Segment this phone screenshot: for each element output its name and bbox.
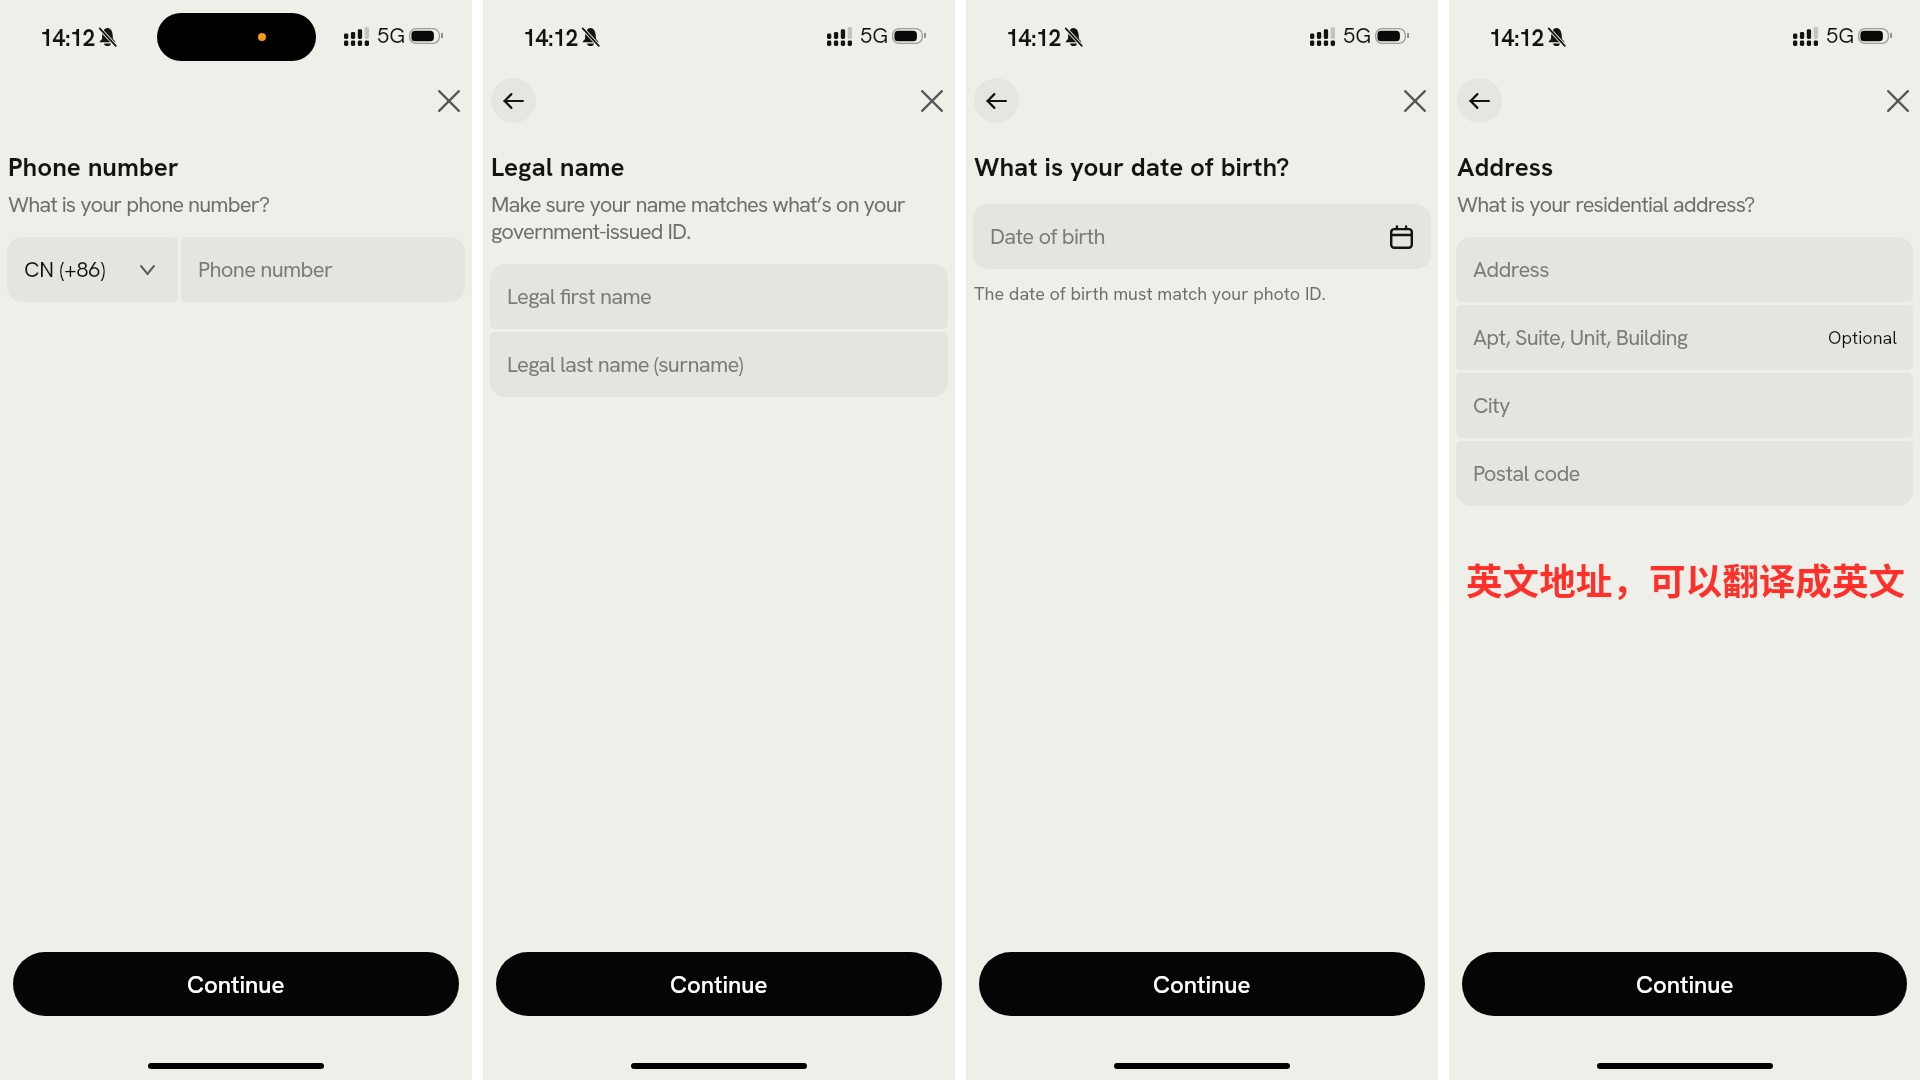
staticText: What is your residential address? bbox=[1457, 191, 1755, 218]
button[interactable]: Close bbox=[1880, 83, 1916, 119]
staticText: The date of birth must match your photo … bbox=[974, 282, 1326, 305]
button[interactable]: Close bbox=[1397, 83, 1433, 119]
staticText: Address bbox=[1473, 255, 1549, 284]
button[interactable]: Date of birth bbox=[973, 204, 1431, 269]
button[interactable]: Postal code bbox=[1456, 441, 1913, 506]
button[interactable]: Continue bbox=[496, 952, 942, 1016]
staticText: Legal name bbox=[491, 150, 625, 184]
staticText: Phone number bbox=[198, 255, 333, 284]
button[interactable]: Continue bbox=[1462, 952, 1907, 1016]
staticText: 5G bbox=[1343, 25, 1372, 48]
staticText: Continue bbox=[187, 969, 285, 1000]
button[interactable]: Continue bbox=[979, 952, 1425, 1016]
staticText: Continue bbox=[1153, 969, 1251, 1000]
staticText: Optional bbox=[1828, 326, 1898, 349]
button[interactable]: Address bbox=[1456, 237, 1913, 302]
staticText: Date of birth bbox=[990, 222, 1105, 251]
staticText: Legal last name (surname) bbox=[507, 350, 743, 379]
button[interactable]: Phone number bbox=[181, 237, 465, 302]
staticText: Apt, Suite, Unit, Building bbox=[1473, 323, 1688, 352]
staticText: 14:12 bbox=[523, 23, 579, 53]
staticText: 英文地址，可以翻译成英文 bbox=[1466, 553, 1906, 606]
button[interactable]: Back bbox=[974, 78, 1019, 123]
staticText: Phone number bbox=[8, 150, 179, 184]
button[interactable]: Legal first name bbox=[490, 264, 948, 329]
button[interactable]: Apt, Suite, Unit, Building bbox=[1456, 305, 1913, 370]
staticText: CN (+86) bbox=[24, 255, 106, 284]
staticText: City bbox=[1473, 391, 1510, 420]
button[interactable]: Close bbox=[431, 83, 467, 119]
staticText: 14:12 bbox=[1489, 23, 1545, 53]
staticText: 5G bbox=[1826, 25, 1855, 48]
staticText: What is your date of birth? bbox=[974, 150, 1290, 184]
button[interactable]: CN (+86) bbox=[7, 237, 178, 302]
button[interactable]: Back bbox=[491, 78, 536, 123]
staticText: Postal code bbox=[1473, 459, 1580, 488]
staticText: What is your phone number? bbox=[8, 191, 270, 218]
staticText: Address bbox=[1457, 150, 1554, 184]
button[interactable]: City bbox=[1456, 373, 1913, 438]
staticText: 5G bbox=[377, 25, 406, 48]
staticText: Make sure your name matches what’s on yo… bbox=[491, 191, 947, 245]
staticText: Continue bbox=[1636, 969, 1734, 1000]
staticText: Continue bbox=[670, 969, 768, 1000]
staticText: 14:12 bbox=[1006, 23, 1062, 53]
staticText: Legal first name bbox=[507, 282, 652, 311]
button[interactable]: Continue bbox=[13, 952, 459, 1016]
button[interactable]: Legal last name (surname) bbox=[490, 332, 948, 397]
staticText: 14:12 bbox=[40, 23, 96, 53]
button[interactable]: Close bbox=[914, 83, 950, 119]
button[interactable]: Back bbox=[1457, 78, 1502, 123]
staticText: 5G bbox=[860, 25, 889, 48]
